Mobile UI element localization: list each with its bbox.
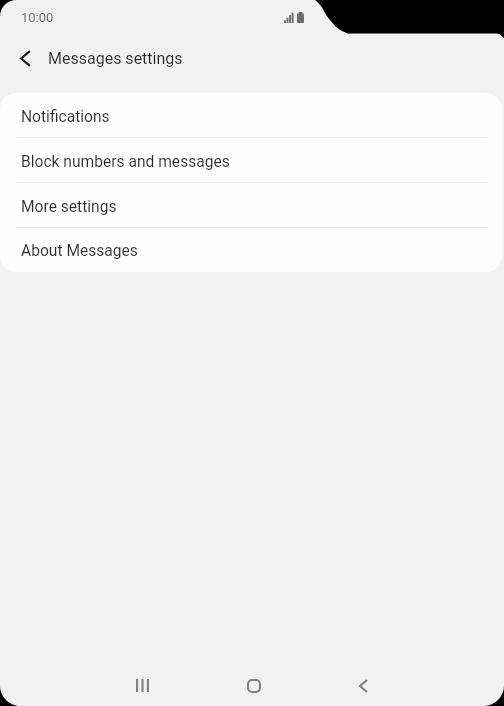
button[interactable]: Navigate up [9, 42, 42, 75]
button[interactable]: Back [340, 662, 387, 706]
button[interactable]: About Messages [0, 228, 502, 272]
button[interactable]: Notifications [0, 93, 502, 138]
staticText: More settings [21, 198, 117, 216]
staticText: Block numbers and messages [21, 153, 230, 171]
staticText: About Messages [21, 242, 138, 260]
button[interactable]: Home [230, 662, 277, 706]
staticText: Messages settings [48, 49, 183, 68]
button[interactable]: Block numbers and messages [0, 138, 502, 183]
staticText: Notifications [21, 108, 110, 126]
button[interactable]: Recent apps [119, 662, 166, 706]
button[interactable]: More settings [0, 183, 502, 228]
staticText: 10:00 [21, 10, 54, 25]
